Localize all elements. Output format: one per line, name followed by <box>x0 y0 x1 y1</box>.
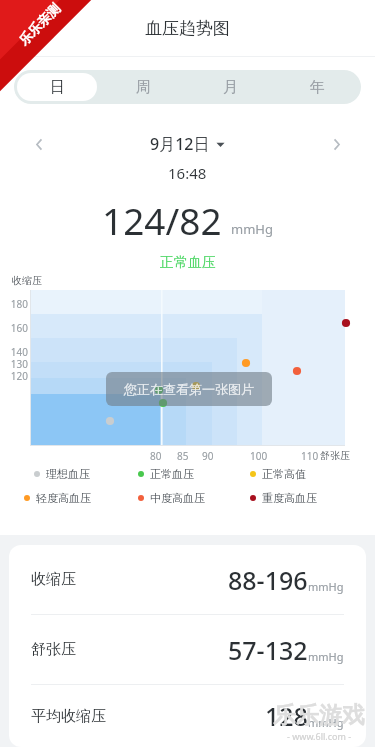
button[interactable]: Next day <box>297 128 375 160</box>
staticText: 收缩压 <box>12 274 42 287</box>
staticText: mmHg <box>308 649 344 664</box>
staticText: 血压趋势图 <box>145 18 230 39</box>
staticText: 100 <box>250 449 268 463</box>
staticText: 9月12日 <box>150 133 210 155</box>
staticText: 85 <box>177 449 189 463</box>
staticText: 日 <box>50 78 65 97</box>
staticText: 理想血压 <box>46 467 90 481</box>
staticText: 重度高血压 <box>262 491 317 505</box>
staticText: 周 <box>136 78 151 97</box>
staticText: 正常血压 <box>150 467 194 481</box>
staticText: - www.6ll.com - <box>287 730 352 742</box>
staticText: 128 <box>265 699 308 733</box>
staticText: 57-132 <box>228 633 308 667</box>
staticText: 舒张压 <box>320 449 350 462</box>
staticText: 88-196 <box>228 563 308 597</box>
button[interactable]: 9月12日 <box>78 133 297 155</box>
staticText: 您正在查看第一张图片 <box>124 381 254 397</box>
staticText: 130 <box>2 357 28 371</box>
staticText: 140 <box>2 345 28 359</box>
staticText: 月 <box>223 78 238 97</box>
button[interactable]: 月 <box>190 73 271 101</box>
staticText: mmHg <box>308 715 344 730</box>
staticText: 80 <box>150 449 162 463</box>
staticText: 乐乐亲测 <box>10 0 68 53</box>
staticText: 180 <box>2 297 28 311</box>
staticText: 收缩压 <box>31 570 76 589</box>
button[interactable]: 日 <box>17 73 97 101</box>
staticText: 正常高值 <box>262 467 306 481</box>
staticText: 年 <box>310 78 325 97</box>
button[interactable]: Previous day <box>0 128 78 160</box>
button[interactable]: 平均收缩压 <box>9 685 366 747</box>
staticText: 舒张压 <box>31 640 76 659</box>
button[interactable]: 收缩压 <box>9 545 366 614</box>
staticText: 平均收缩压 <box>31 707 106 726</box>
staticText: 120 <box>2 369 28 383</box>
button[interactable]: 周 <box>103 73 184 101</box>
staticText: mmHg <box>231 220 273 238</box>
staticText: 正常血压 <box>160 254 216 269</box>
staticText: mmHg <box>308 579 344 594</box>
staticText: 124/82 <box>102 195 222 245</box>
staticText: 160 <box>2 321 28 335</box>
staticText: 16:48 <box>168 163 207 183</box>
staticText: 110 <box>301 449 319 463</box>
staticText: 轻度高血压 <box>36 491 91 505</box>
staticText: 乐乐游戏 <box>273 701 365 730</box>
staticText: 中度高血压 <box>150 491 205 505</box>
staticText: 90 <box>202 449 214 463</box>
button[interactable]: 年 <box>277 73 358 101</box>
button[interactable]: 舒张压 <box>9 615 366 684</box>
